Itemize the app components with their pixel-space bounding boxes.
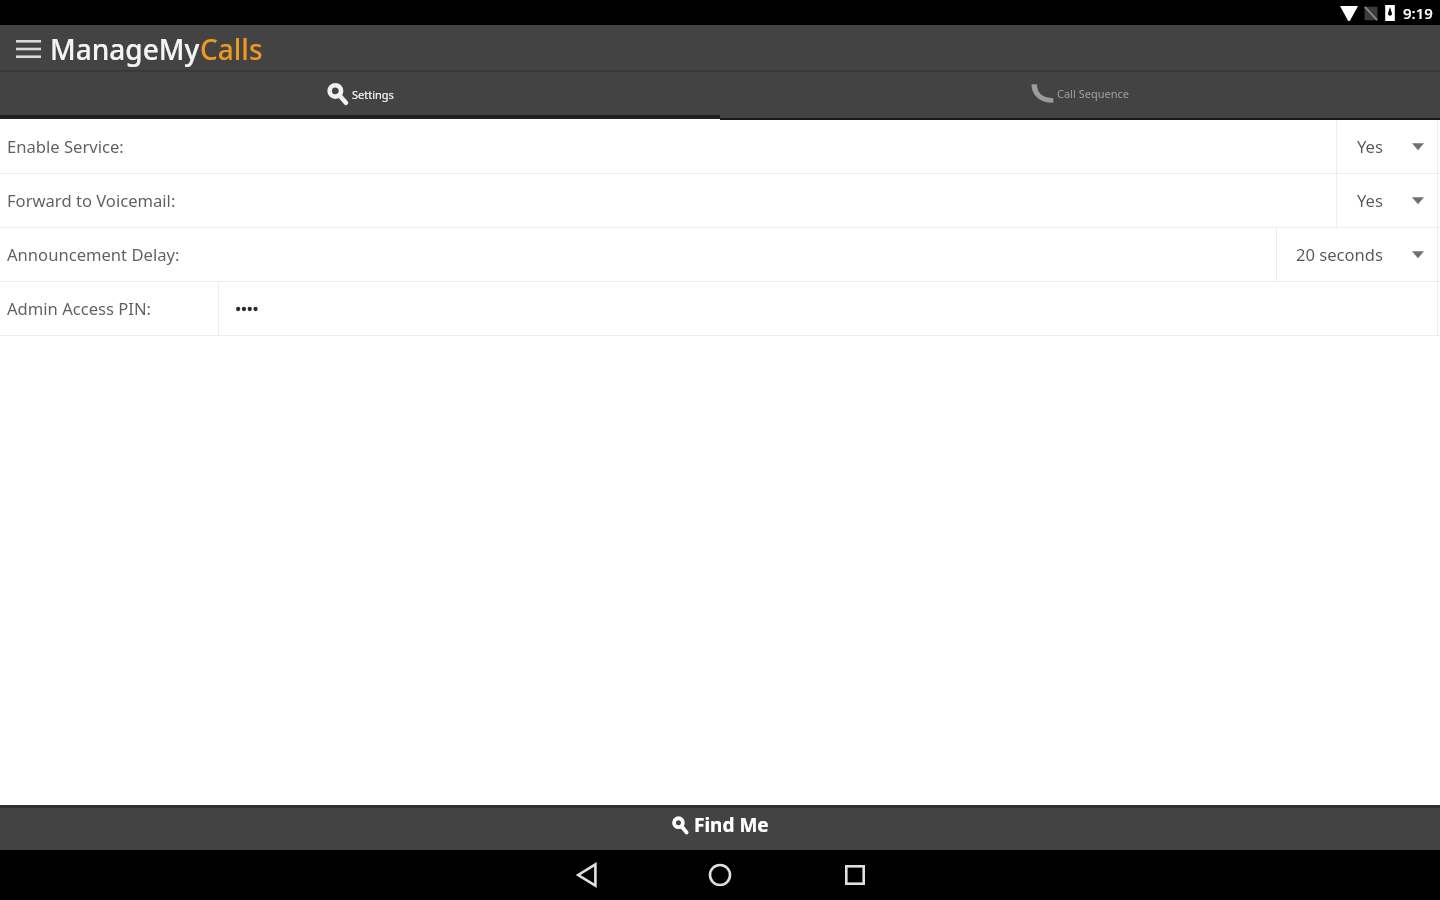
staticText: Admin Access PIN: [7,297,152,320]
button[interactable]: Home [696,851,744,899]
button[interactable]: Find Me [0,805,1440,850]
button[interactable]: Announcement Delay: [0,228,1440,281]
staticText: 20 seconds [1296,243,1384,266]
staticText: Enable Service: [7,135,124,158]
staticText: Settings [352,87,394,102]
button[interactable]: Yes [1337,120,1437,173]
staticText: Announcement Delay: [7,243,180,266]
button[interactable]: Call Sequence [720,72,1440,120]
staticText: Forward to Voicemail: [7,189,176,212]
button[interactable]: Enable Service: [0,120,1440,173]
staticText: Find Me [694,812,769,838]
button[interactable]: Back [563,851,611,899]
button[interactable]: Forward to Voicemail: [0,174,1440,227]
staticText: Yes [1357,189,1383,212]
staticText: Calls [200,30,263,68]
button[interactable]: Recent apps [831,851,879,899]
staticText: 9:19 [1403,3,1433,23]
button[interactable]: Open navigation drawer [0,26,56,72]
button[interactable]: Admin Access PIN: [0,282,1440,335]
staticText: Yes [1357,135,1383,158]
staticText: Call Sequence [1057,86,1129,101]
button[interactable]: Settings [0,72,720,120]
button[interactable]: Yes [1337,174,1437,227]
staticText: ManageMy [50,30,200,68]
button[interactable]: 20 seconds [1277,228,1437,281]
